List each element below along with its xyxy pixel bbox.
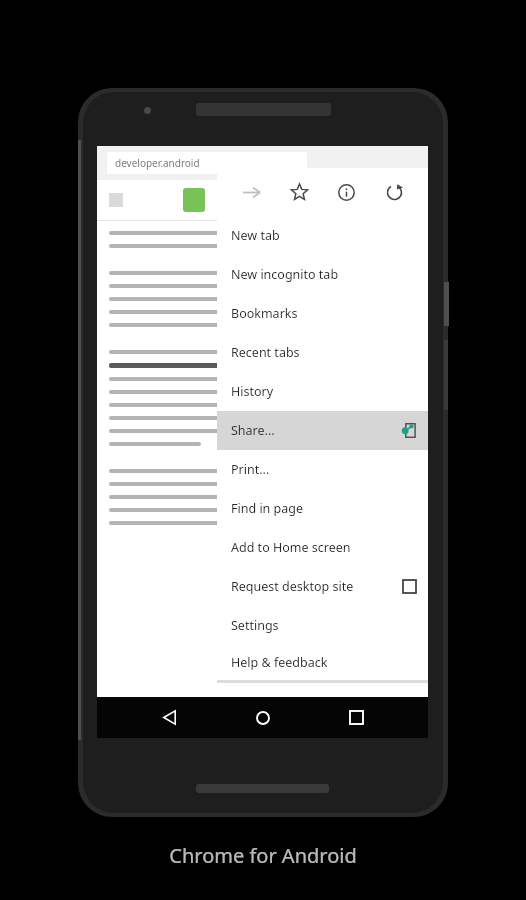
staticText: Chrome for Android [0, 842, 526, 869]
button[interactable]: Home [242, 697, 284, 738]
staticText: Find in page [231, 500, 304, 517]
button[interactable]: Find in page [217, 489, 428, 528]
button[interactable]: Recents [335, 697, 377, 738]
button[interactable]: Help & feedback [217, 645, 428, 680]
button[interactable]: Recent tabs [217, 333, 428, 372]
staticText: History [231, 383, 274, 400]
button[interactable]: New tab [217, 216, 428, 255]
button[interactable]: Share... [217, 411, 428, 450]
staticText: developer.android [115, 156, 200, 170]
button[interactable]: New incognito tab [217, 255, 428, 294]
staticText: New incognito tab [231, 266, 339, 283]
staticText: Print... [231, 461, 270, 478]
staticText: New tab [231, 227, 280, 244]
button[interactable]: History [217, 372, 428, 411]
staticText: Add to Home screen [231, 539, 351, 556]
staticText: Request desktop site [231, 578, 354, 595]
button[interactable]: Page info [326, 172, 366, 212]
button[interactable]: Print... [217, 450, 428, 489]
button[interactable]: Reload [374, 172, 414, 212]
button[interactable]: Back [148, 697, 190, 738]
button[interactable]: Request desktop site [217, 567, 428, 606]
staticText: Recent tabs [231, 344, 300, 361]
staticText: Share... [231, 422, 275, 439]
staticText: Bookmarks [231, 305, 298, 322]
button[interactable]: Forward [231, 172, 271, 212]
button[interactable]: Add to Home screen [217, 528, 428, 567]
staticText: Settings [231, 617, 279, 634]
staticText: Help & feedback [231, 654, 328, 671]
button[interactable]: Bookmark [279, 172, 319, 212]
button[interactable]: Bookmarks [217, 294, 428, 333]
button[interactable]: Settings [217, 606, 428, 645]
